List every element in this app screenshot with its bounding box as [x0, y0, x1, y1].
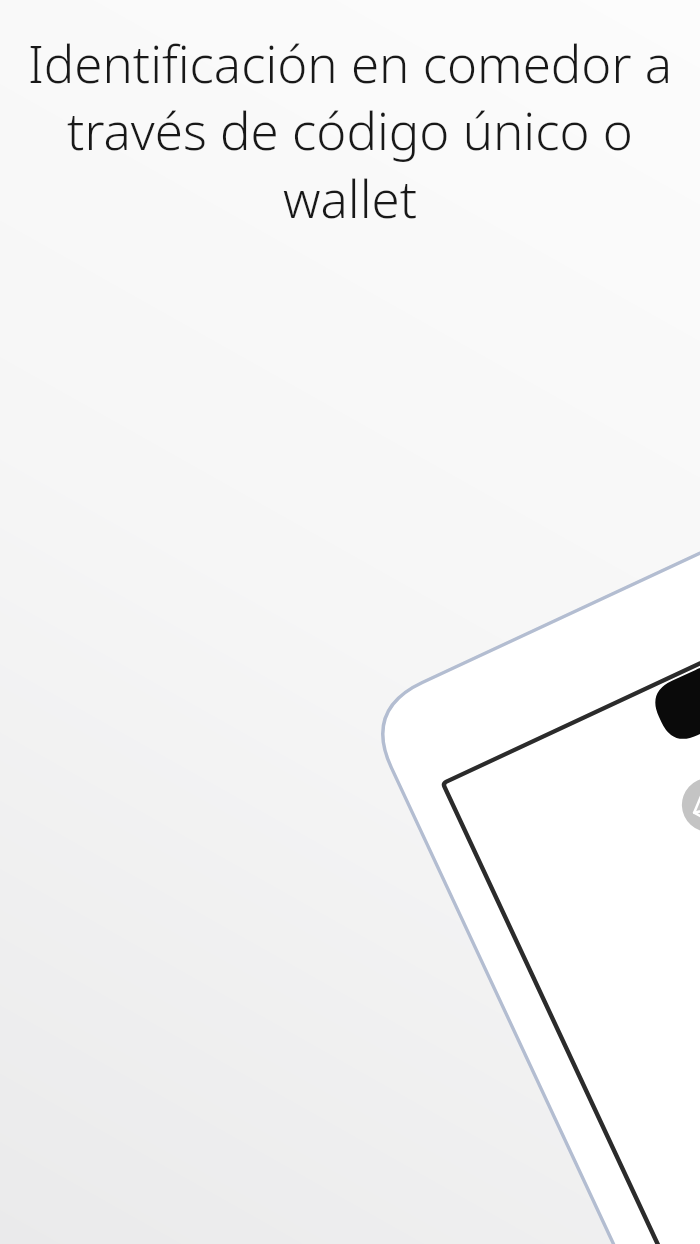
staticText: Identificación en comedor a través de có… — [16, 28, 684, 233]
